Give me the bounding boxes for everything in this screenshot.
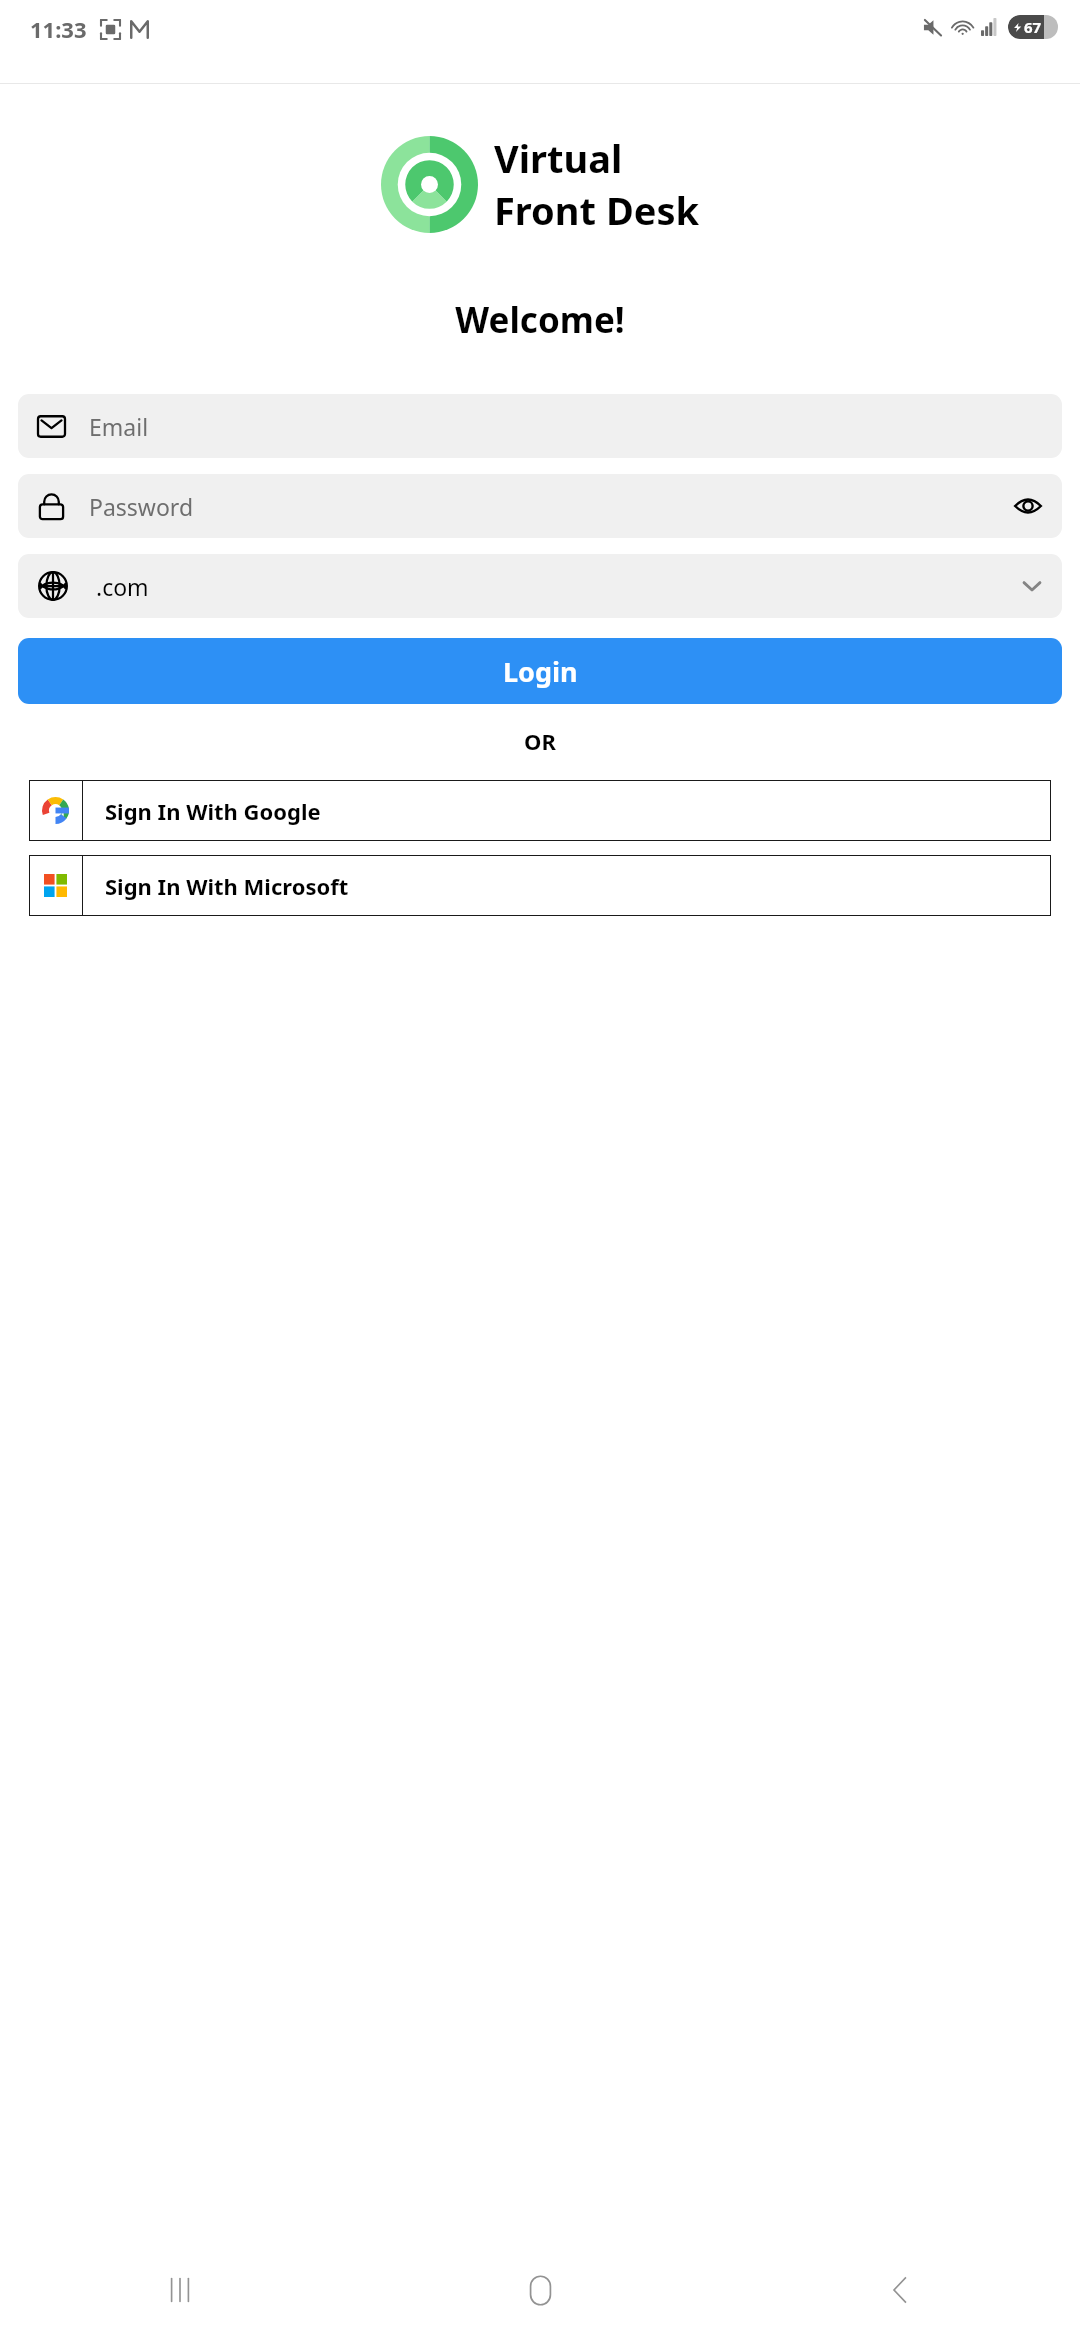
button[interactable]: Sign In With Microsoft: [29, 855, 1051, 916]
staticText: .com: [96, 571, 149, 602]
staticText: Email: [89, 411, 149, 442]
button[interactable]: Home: [360, 2240, 720, 2340]
button[interactable]: Recent apps: [0, 2240, 360, 2340]
staticText: Sign In With Google: [105, 796, 321, 826]
staticText: Login: [503, 653, 578, 690]
button[interactable]: .com: [18, 554, 1062, 618]
other: Show password: [1014, 492, 1042, 520]
button[interactable]: Back: [720, 2240, 1080, 2340]
staticText: Front Desk: [494, 184, 700, 236]
button[interactable]: Email: [18, 394, 1062, 458]
button[interactable]: Sign In With Google: [29, 780, 1051, 841]
staticText: Sign In With Microsoft: [105, 871, 349, 901]
staticText: Password: [89, 491, 194, 522]
other: Expand domain: [1022, 576, 1042, 596]
staticText: Virtual: [494, 132, 623, 184]
button[interactable]: Login: [18, 638, 1062, 704]
staticText: 67: [1024, 17, 1042, 37]
staticText: OR: [0, 726, 1080, 756]
button[interactable]: Password: [18, 474, 1062, 538]
staticText: Welcome!: [0, 296, 1080, 344]
staticText: 11:33: [30, 14, 87, 44]
